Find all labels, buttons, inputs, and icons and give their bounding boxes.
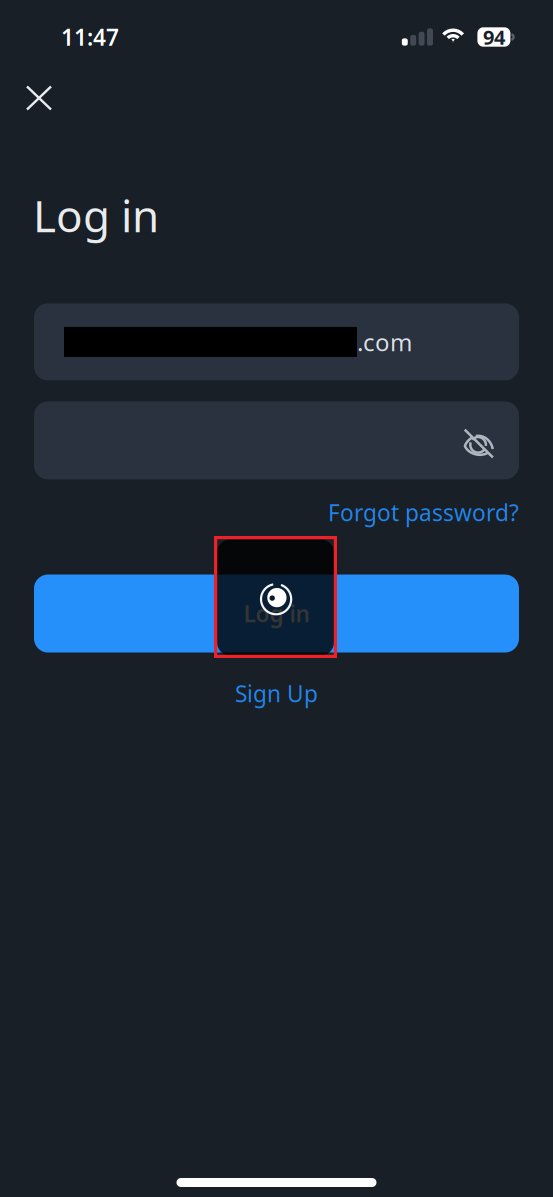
- button[interactable]: Log in: [34, 574, 519, 652]
- button[interactable]: Forgot password?: [328, 497, 519, 527]
- staticText: Forgot password?: [328, 497, 519, 527]
- button[interactable]: Show password: [451, 410, 507, 471]
- staticText: Log in: [243, 598, 309, 629]
- staticText: 94: [483, 24, 505, 50]
- button[interactable]: Sign Up: [0, 671, 553, 715]
- button[interactable]: Close: [12, 72, 66, 124]
- staticText: 11:47: [61, 22, 119, 52]
- staticText: Log in: [33, 186, 159, 244]
- button[interactable]: Password: [34, 401, 519, 479]
- staticText: Sign Up: [235, 678, 318, 709]
- button[interactable]: Email address: [34, 303, 519, 380]
- staticText: .com: [357, 326, 412, 358]
